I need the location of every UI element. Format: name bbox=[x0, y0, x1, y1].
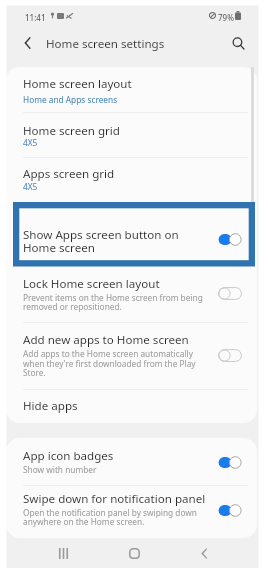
button[interactable] bbox=[0, 202, 262, 266]
button[interactable] bbox=[0, 438, 262, 485]
staticText: Home screen grid bbox=[23, 123, 120, 139]
staticText: 79% bbox=[218, 12, 234, 23]
button[interactable] bbox=[0, 388, 262, 422]
staticText: Open the notification panel by swiping d… bbox=[23, 507, 197, 518]
staticText: Add apps to the Home screen automaticall… bbox=[23, 348, 193, 359]
staticText: 4X5 bbox=[23, 181, 38, 192]
staticText: Prevent items on the Home screen from be… bbox=[23, 292, 203, 303]
staticText: removed or repositioned. bbox=[23, 301, 122, 312]
staticText: anywhere on the Home screen. bbox=[23, 516, 145, 527]
button[interactable] bbox=[0, 322, 262, 388]
staticText: Home and Apps screens bbox=[23, 94, 118, 105]
staticText: Home screen bbox=[23, 240, 95, 256]
button[interactable]: Switch off bbox=[218, 349, 242, 362]
button[interactable] bbox=[0, 485, 262, 538]
staticText: Swipe down for notification panel bbox=[23, 491, 206, 507]
staticText: when they're first downloaded from the P… bbox=[23, 358, 196, 369]
button[interactable]: Switch off bbox=[218, 287, 242, 300]
button[interactable]: Navigate up bbox=[16, 31, 40, 55]
staticText: Show with number bbox=[23, 464, 97, 475]
staticText: App icon badges bbox=[23, 448, 114, 464]
staticText: 4X5 bbox=[23, 137, 38, 148]
button[interactable]: Home bbox=[122, 541, 146, 565]
staticText: Show Apps screen button on bbox=[23, 227, 179, 243]
staticText: Hide apps bbox=[23, 398, 78, 414]
button[interactable]: Search bbox=[226, 31, 250, 55]
staticText: Home screen layout bbox=[23, 76, 132, 92]
staticText: Lock Home screen layout bbox=[23, 276, 160, 292]
button[interactable] bbox=[0, 266, 262, 322]
staticText: Apps screen grid bbox=[23, 166, 115, 182]
staticText: Home screen settings bbox=[46, 36, 165, 52]
button[interactable]: Recents bbox=[51, 541, 75, 565]
staticText: Store. bbox=[23, 367, 46, 378]
button[interactable]: Switch on bbox=[218, 504, 242, 517]
staticText: 11:41 bbox=[25, 12, 46, 23]
button[interactable]: Switch on bbox=[218, 233, 242, 246]
button[interactable]: Back bbox=[192, 541, 216, 565]
staticText: Add new apps to Home screen bbox=[23, 332, 189, 348]
button[interactable]: Switch on bbox=[218, 456, 242, 469]
